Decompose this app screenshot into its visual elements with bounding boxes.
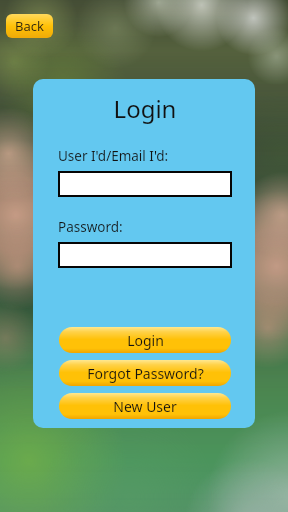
staticText: Password:	[58, 218, 123, 236]
staticText: Login	[58, 92, 232, 125]
button[interactable]	[58, 242, 232, 268]
staticText: Back	[15, 17, 44, 35]
staticText: Forgot Password?	[87, 364, 204, 383]
other: Back	[0, 0, 47, 24]
staticText: New User	[113, 397, 177, 416]
button[interactable]: New User	[59, 393, 231, 419]
button[interactable]: Forgot Password?	[59, 360, 231, 386]
button[interactable]: Login	[59, 327, 231, 353]
staticText: User I'd/Email I'd:	[58, 147, 169, 165]
staticText: Login	[127, 331, 164, 350]
button[interactable]: Back	[6, 14, 53, 38]
button[interactable]	[58, 171, 232, 197]
